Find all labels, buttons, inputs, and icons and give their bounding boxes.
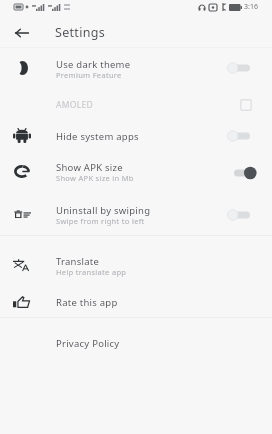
staticText: Use dark theme: [56, 58, 131, 71]
button[interactable]: Rate this app: [0, 296, 272, 331]
staticText: AMOLED: [56, 99, 93, 111]
button[interactable]: Show APK size: [0, 161, 272, 194]
staticText: Uninstall by swiping: [56, 204, 151, 217]
button[interactable]: Switch off: [224, 59, 256, 77]
button[interactable]: Switch off: [224, 206, 256, 224]
staticText: Translate: [56, 255, 100, 268]
staticText: Settings: [55, 24, 105, 41]
staticText: Swipe from right to left: [56, 216, 145, 226]
staticText: Rate this app: [56, 296, 118, 309]
staticText: Hide system apps: [56, 130, 139, 143]
button[interactable]: Use dark theme: [0, 58, 272, 91]
button[interactable]: Translate: [0, 255, 272, 288]
button[interactable]: AMOLED checkbox: [240, 99, 252, 111]
button[interactable]: Privacy Policy: [0, 337, 272, 373]
button[interactable]: Uninstall by swiping: [0, 204, 272, 237]
button[interactable]: Switch on: [230, 164, 262, 182]
staticText: 3:16: [244, 2, 258, 12]
staticText: Privacy Policy: [56, 337, 120, 350]
staticText: Help translate app: [56, 267, 127, 277]
staticText: Premium Feature: [56, 70, 122, 80]
button[interactable]: Switch off: [224, 127, 256, 145]
staticText: Show APK size in Mb: [56, 173, 134, 183]
button[interactable]: AMOLED: [0, 91, 272, 119]
button[interactable]: Back: [8, 19, 35, 46]
button[interactable]: Hide system apps: [0, 130, 272, 167]
staticText: Show APK size: [56, 161, 123, 174]
